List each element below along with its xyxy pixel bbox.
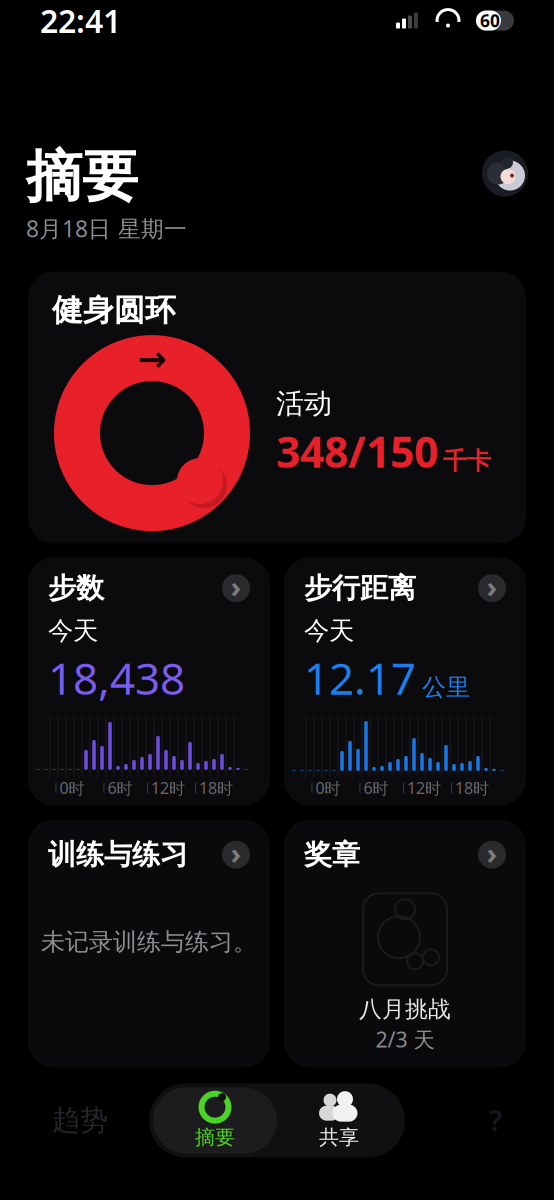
staticText: 步数 (48, 571, 104, 605)
staticText: 千卡 (443, 446, 491, 476)
staticText: ? (489, 1102, 502, 1139)
staticText: 348/150 (276, 423, 438, 480)
staticText: 共享 (319, 1125, 359, 1150)
staticText: 今天 (304, 615, 354, 646)
staticText: › (486, 833, 497, 872)
staticText: 18时 (455, 777, 489, 798)
button[interactable]: 步数 (28, 557, 270, 805)
button[interactable]: 健身圆环 (28, 271, 526, 543)
staticText: 12时 (151, 777, 185, 798)
staticText: 6时 (363, 777, 388, 798)
staticText: 奖章 (304, 837, 360, 872)
staticText: 今天 (48, 615, 98, 646)
staticText: › (486, 567, 497, 606)
staticText: 活动 (276, 387, 332, 421)
staticText: 未记录训练与练习。 (41, 927, 257, 957)
staticText: 摘要 (195, 1125, 235, 1150)
staticText: 0时 (59, 777, 84, 798)
staticText: 趋势 (52, 1103, 108, 1138)
staticText: 6时 (107, 777, 132, 798)
button[interactable]: 共享 (277, 1087, 401, 1153)
staticText: 公里 (422, 672, 470, 702)
staticText: 8月18日 星期一 (26, 213, 187, 243)
staticText: 18时 (199, 777, 233, 798)
staticText: 八月挑战 (359, 995, 451, 1023)
staticText: 22:41 (40, 0, 121, 42)
staticText: 步行距离 (304, 571, 416, 605)
staticText: → (137, 339, 166, 379)
staticText: 0时 (315, 777, 340, 798)
staticText: 12.17 (304, 648, 416, 707)
button[interactable]: 奖章 (284, 819, 526, 1067)
button[interactable]: 训练与练习 (28, 819, 270, 1067)
button[interactable]: 摘要 (153, 1087, 277, 1153)
staticText: › (230, 833, 241, 872)
button[interactable]: 步行距离 (284, 557, 526, 805)
staticText: 18,438 (48, 648, 185, 707)
button[interactable]: 个人资料 (482, 151, 528, 197)
staticText: 12时 (407, 777, 441, 798)
staticText: 健身圆环 (52, 291, 176, 329)
staticText: › (230, 567, 241, 606)
staticText: 摘要 (26, 143, 138, 211)
staticText: 训练与练习 (48, 837, 188, 872)
staticText: 2/3 天 (375, 1025, 434, 1053)
staticText: 60 (480, 9, 500, 32)
